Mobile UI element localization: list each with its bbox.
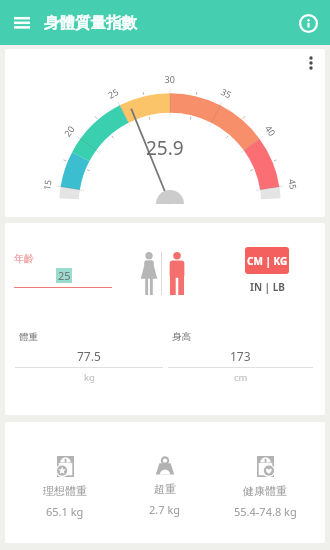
staticText: 77.5 <box>77 348 101 364</box>
button[interactable]: CM | KG <box>245 247 289 274</box>
staticText: 身高 <box>172 331 191 343</box>
staticText: 173 <box>230 348 251 364</box>
staticText: 65.1 kg <box>46 504 84 519</box>
staticText: cm <box>234 371 248 384</box>
button[interactable]: Male <box>159 247 195 300</box>
staticText: 25.9 <box>146 135 184 161</box>
button[interactable]: 超重 <box>115 422 215 543</box>
staticText: 理想體重 <box>43 484 87 498</box>
button[interactable]: 健康體重 <box>215 422 315 543</box>
button[interactable]: 體重 <box>15 331 163 383</box>
staticText: 健康體重 <box>243 484 287 498</box>
button[interactable]: More options <box>300 52 322 74</box>
staticText: 2.7 kg <box>149 502 181 517</box>
button[interactable]: Menu <box>6 7 37 38</box>
button[interactable]: 身高 <box>168 331 313 383</box>
staticText: CM | KG <box>247 254 288 268</box>
staticText: 超重 <box>154 482 176 496</box>
staticText: 體重 <box>19 331 38 343</box>
staticText: 年齡 <box>14 252 34 265</box>
staticText: 55.4-74.8 kg <box>234 504 297 519</box>
button[interactable]: Info <box>293 8 323 38</box>
staticText: 25 <box>58 268 71 283</box>
staticText: 身體質量指數 <box>44 13 137 33</box>
staticText: kg <box>84 371 95 384</box>
button[interactable]: Age <box>9 245 117 293</box>
staticText: IN | LB <box>250 280 285 294</box>
button[interactable]: IN | LB <box>245 278 289 296</box>
button[interactable]: 理想體重 <box>15 422 115 543</box>
button[interactable]: Female <box>132 247 166 300</box>
